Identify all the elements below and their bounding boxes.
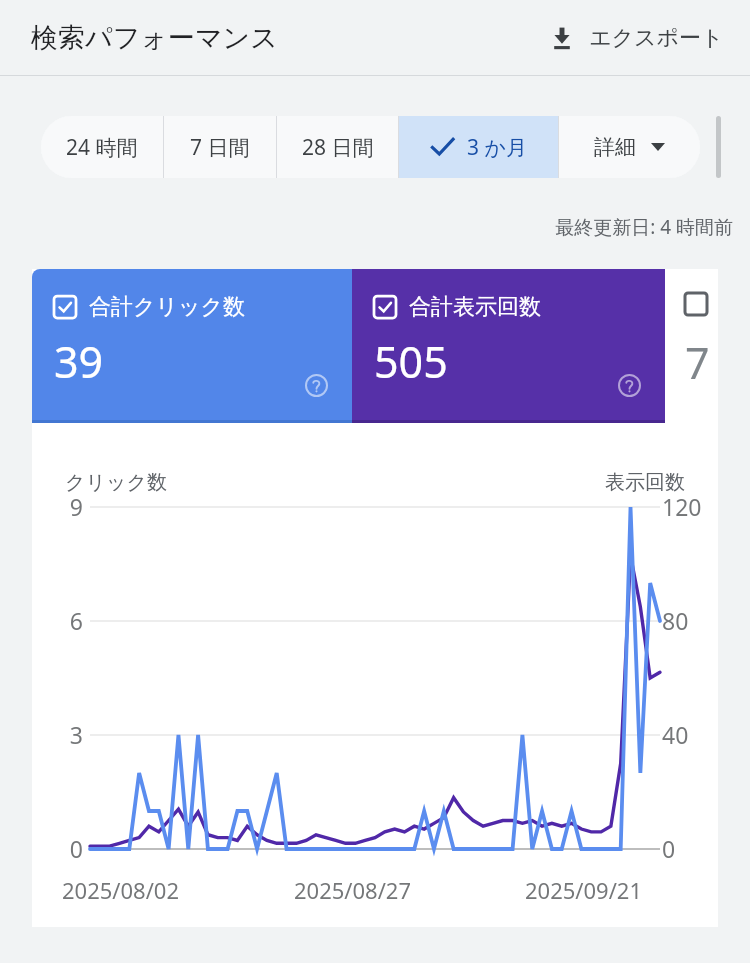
button[interactable]: 合計表示回数 (352, 269, 665, 423)
staticText: クリック数 (65, 470, 167, 495)
staticText: 最終更新日: 4 時間前 (0, 214, 733, 240)
staticText: 28 日間 (302, 133, 374, 162)
staticText: 0 (32, 833, 83, 864)
staticText: 9 (32, 491, 83, 522)
staticText: エクスポート (589, 24, 724, 52)
button[interactable]: 24 時間 (41, 116, 163, 178)
button[interactable]: エクスポート (543, 16, 730, 60)
staticText: 39 (54, 332, 104, 391)
button[interactable]: 7 (665, 269, 718, 423)
staticText: 合計クリック数 (89, 293, 246, 321)
button[interactable]: ヘルプ (618, 374, 641, 397)
staticText: 2025/08/27 (256, 875, 449, 905)
staticText: 6 (32, 605, 83, 636)
button[interactable]: 3 か月 (399, 116, 558, 178)
button[interactable]: 合計クリック数 (32, 269, 352, 423)
staticText: 2025/08/02 (62, 875, 256, 905)
staticText: 40 (662, 719, 718, 750)
staticText: 80 (662, 605, 718, 636)
staticText: 0 (662, 833, 718, 864)
staticText: 24 時間 (66, 133, 138, 162)
staticText: 検索パフォーマンス (31, 21, 278, 55)
button[interactable]: 28 日間 (277, 116, 398, 178)
staticText: 3 か月 (467, 133, 527, 162)
staticText: 2025/09/21 (449, 875, 642, 905)
button[interactable]: ヘルプ (305, 374, 328, 397)
other: エクスポート (549, 25, 575, 51)
staticText: 7 (685, 333, 710, 392)
staticText: 3 (32, 719, 83, 750)
staticText: 505 (374, 332, 448, 391)
staticText: 120 (662, 491, 718, 522)
button[interactable]: 詳細 (559, 116, 700, 178)
staticText: 7 日間 (190, 133, 250, 162)
staticText: 表示回数 (605, 470, 685, 495)
staticText: 合計表示回数 (409, 293, 541, 321)
staticText: 詳細 (594, 134, 636, 160)
button[interactable]: 7 日間 (164, 116, 276, 178)
